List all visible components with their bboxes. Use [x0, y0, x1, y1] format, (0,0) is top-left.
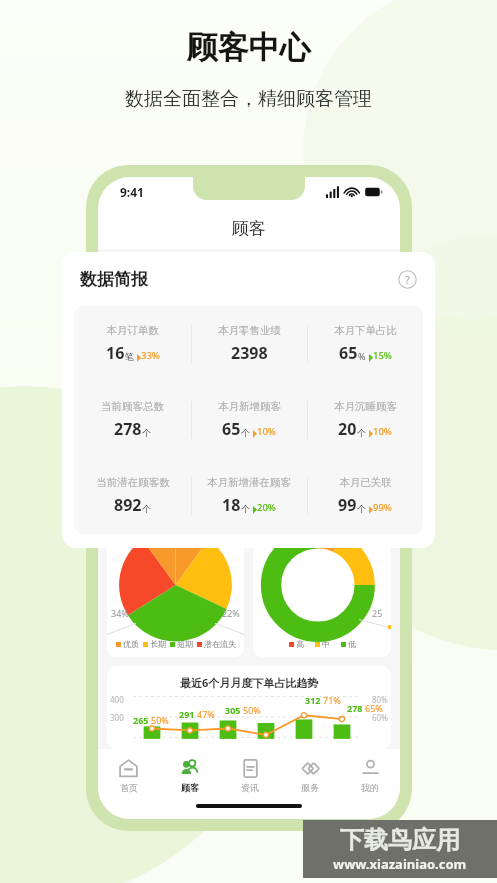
staticText: 个	[142, 427, 151, 438]
staticText: 80%	[372, 694, 388, 705]
staticText: 短期	[177, 639, 193, 649]
staticText: 我的	[361, 782, 379, 793]
button[interactable]: 我的	[340, 749, 400, 801]
staticText: 潜在流失	[204, 639, 236, 649]
staticText: 服务	[301, 782, 319, 793]
staticText: 本月下单占比	[334, 324, 397, 337]
staticText: 33%	[141, 349, 160, 362]
staticText: 下载鸟应用	[340, 825, 460, 855]
staticText: 15%	[373, 349, 392, 362]
button[interactable]: 25	[253, 537, 391, 657]
staticText: 个	[357, 503, 366, 514]
staticText: 71%	[323, 694, 341, 706]
staticText: 本月订单数	[106, 324, 159, 337]
staticText: ?	[405, 272, 410, 287]
button[interactable]: 本月零售业绩	[191, 306, 307, 382]
staticText: 99	[338, 494, 357, 516]
staticText: 10%	[373, 425, 392, 438]
staticText: 16	[106, 342, 125, 364]
staticText: 个	[142, 503, 151, 514]
staticText: 305	[225, 704, 241, 716]
staticText: 65	[222, 418, 241, 440]
staticText: 个	[241, 427, 250, 438]
staticText: 25	[372, 607, 383, 619]
button[interactable]: 34%	[107, 537, 244, 657]
staticText: 265	[133, 714, 149, 726]
staticText: 个	[357, 427, 366, 438]
staticText: 892	[114, 494, 142, 516]
staticText: 300	[110, 712, 124, 723]
staticText: 312	[305, 694, 321, 706]
staticText: 当前顾客总数	[101, 400, 164, 413]
button[interactable]: 服务	[280, 749, 340, 801]
staticText: 本月新增顾客	[218, 400, 281, 413]
button[interactable]: 本月下单占比	[307, 306, 423, 382]
button[interactable]: 本月新增潜在顾客	[191, 458, 307, 534]
button[interactable]: 顾客	[159, 749, 220, 801]
staticText: 资讯	[241, 782, 259, 793]
button[interactable]: 当前潜在顾客数	[74, 458, 191, 534]
staticText: 当前潜在顾客数	[96, 476, 170, 489]
button[interactable]: 首页	[98, 749, 159, 801]
staticText: 22%	[222, 607, 240, 619]
staticText: www.xiazainiao.com	[333, 855, 467, 873]
staticText: 291	[179, 708, 195, 720]
button[interactable]: 本月沉睡顾客	[307, 382, 423, 458]
staticText: 18	[222, 494, 241, 516]
staticText: 优质	[123, 639, 139, 649]
staticText: 2398	[231, 342, 268, 364]
staticText: 50%	[151, 714, 169, 726]
button[interactable]: 当前顾客总数	[74, 382, 191, 458]
staticText: 65%	[365, 702, 383, 714]
staticText: 278	[347, 702, 363, 714]
staticText: 数据简报	[80, 269, 148, 290]
staticText: 首页	[120, 782, 138, 793]
staticText: 10%	[257, 425, 276, 438]
staticText: 高	[296, 639, 304, 649]
staticText: 60%	[372, 712, 388, 723]
staticText: 本月新增潜在顾客	[207, 476, 291, 489]
staticText: 本月已关联	[339, 476, 392, 489]
staticText: 低	[348, 639, 356, 649]
staticText: 34%	[111, 607, 129, 619]
staticText: 顾客	[232, 218, 266, 239]
button[interactable]: 最近6个月月度下单占比趋势	[107, 666, 391, 749]
staticText: 数据全面整合，精细顾客管理	[0, 87, 497, 111]
staticText: 笔	[125, 351, 134, 362]
staticText: 9:41	[120, 184, 144, 200]
staticText: 47%	[197, 708, 215, 720]
staticText: 50%	[243, 704, 261, 716]
staticText: 个	[241, 503, 250, 514]
staticText: 20	[338, 418, 357, 440]
staticText: 长期	[150, 639, 166, 649]
staticText: %	[358, 350, 366, 362]
staticText: 400	[110, 694, 124, 705]
staticText: 顾客中心	[0, 28, 497, 67]
staticText: 65	[339, 342, 358, 364]
button[interactable]: 帮助	[398, 270, 417, 289]
staticText: 99%	[373, 501, 392, 514]
staticText: 最近6个月月度下单占比趋势	[180, 675, 319, 690]
staticText: 278	[114, 418, 142, 440]
staticText: 顾客	[181, 782, 199, 793]
staticText: 本月沉睡顾客	[334, 400, 397, 413]
button[interactable]: 本月已关联	[307, 458, 423, 534]
button[interactable]: 资讯	[220, 749, 280, 801]
button[interactable]: 本月新增顾客	[191, 382, 307, 458]
staticText: 中	[322, 639, 330, 649]
staticText: 本月零售业绩	[218, 324, 281, 337]
button[interactable]: 本月订单数	[74, 306, 191, 382]
staticText: 20%	[257, 501, 276, 514]
